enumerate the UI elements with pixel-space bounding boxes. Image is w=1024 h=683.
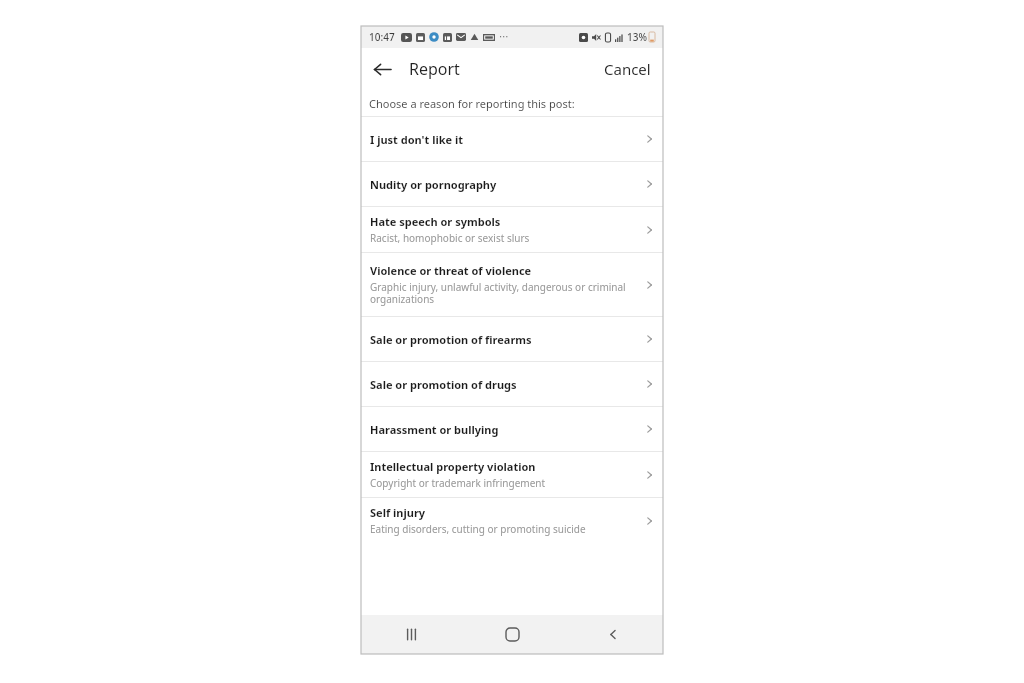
staticText: Self injury — [370, 505, 426, 520]
button[interactable]: Hate speech or symbols — [361, 207, 663, 252]
button[interactable]: I just don't like it — [361, 117, 663, 161]
button[interactable]: Violence or threat of violence — [361, 253, 663, 316]
staticText: I just don't like it — [370, 132, 464, 147]
button[interactable]: Sale or promotion of drugs — [361, 362, 663, 406]
staticText: Cancel — [604, 59, 651, 79]
staticText: Racist, homophobic or sexist slurs — [370, 231, 530, 245]
staticText: Intellectual property violation — [370, 459, 536, 474]
staticText: Eating disorders, cutting or promoting s… — [370, 522, 586, 536]
staticText: Nudity or pornography — [370, 177, 497, 192]
button[interactable]: Back — [586, 615, 640, 654]
staticText: Sale or promotion of firearms — [370, 332, 532, 347]
staticText: ⋯ — [499, 31, 509, 43]
button[interactable]: Harassment or bullying — [361, 407, 663, 451]
staticText: Choose a reason for reporting this post: — [369, 96, 575, 111]
staticText: Sale or promotion of drugs — [370, 377, 517, 392]
staticText: Report — [409, 58, 460, 80]
staticText: 10:47 — [369, 30, 395, 44]
staticText: Harassment or bullying — [370, 422, 499, 437]
staticText: Copyright or trademark infringement — [370, 476, 546, 490]
button[interactable]: Recent apps — [384, 615, 438, 654]
staticText: Violence or threat of violence — [370, 263, 532, 278]
staticText: 13% — [627, 30, 647, 44]
button[interactable]: Home — [485, 615, 539, 654]
button[interactable]: Nudity or pornography — [361, 162, 663, 206]
button[interactable]: Self injury — [361, 498, 663, 543]
button[interactable]: Sale or promotion of firearms — [361, 317, 663, 361]
staticText: Graphic injury, unlawful activity, dange… — [370, 280, 637, 306]
staticText: Hate speech or symbols — [370, 214, 501, 229]
button[interactable]: Intellectual property violation — [361, 452, 663, 497]
button[interactable]: Back — [361, 48, 403, 90]
button[interactable]: Cancel — [592, 49, 663, 89]
